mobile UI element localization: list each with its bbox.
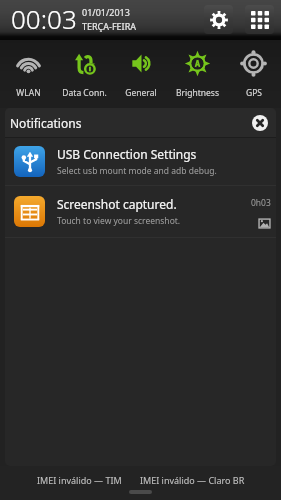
- staticText: Screenshot captured.: [57, 196, 177, 212]
- button[interactable]: USB Connection Settings: [5, 138, 276, 186]
- staticText: Data Conn.: [62, 87, 107, 99]
- button[interactable]: Clear notifications: [250, 113, 270, 133]
- staticText: 00:03: [11, 1, 77, 36]
- button[interactable]: WLAN: [0, 40, 56, 108]
- staticText: Notifications: [10, 115, 82, 131]
- staticText: USB Connection Settings: [57, 146, 197, 162]
- button[interactable]: Brightness: [169, 40, 225, 108]
- staticText: 0h03: [251, 197, 271, 209]
- staticText: Select usb mount mode and adb debug.: [57, 165, 217, 177]
- button[interactable]: Settings: [204, 5, 233, 34]
- staticText: WLAN: [16, 87, 41, 99]
- staticText: GPS: [246, 87, 262, 99]
- button[interactable]: Data Conn.: [56, 40, 112, 108]
- staticText: IMEI inválido — Claro BR: [140, 474, 245, 486]
- staticText: TERÇA-FEIRA: [82, 20, 137, 32]
- staticText: 01/01/2013: [82, 6, 130, 18]
- staticText: Touch to view your screenshot.: [57, 215, 181, 227]
- button[interactable]: Screenshot captured.: [5, 186, 276, 238]
- button[interactable]: GPS: [225, 40, 281, 108]
- button[interactable]: General: [113, 40, 169, 108]
- staticText: General: [125, 87, 157, 99]
- button[interactable]: Apps: [245, 5, 274, 34]
- staticText: IMEI inválido — TIM: [37, 474, 122, 486]
- staticText: Brightness: [176, 87, 219, 99]
